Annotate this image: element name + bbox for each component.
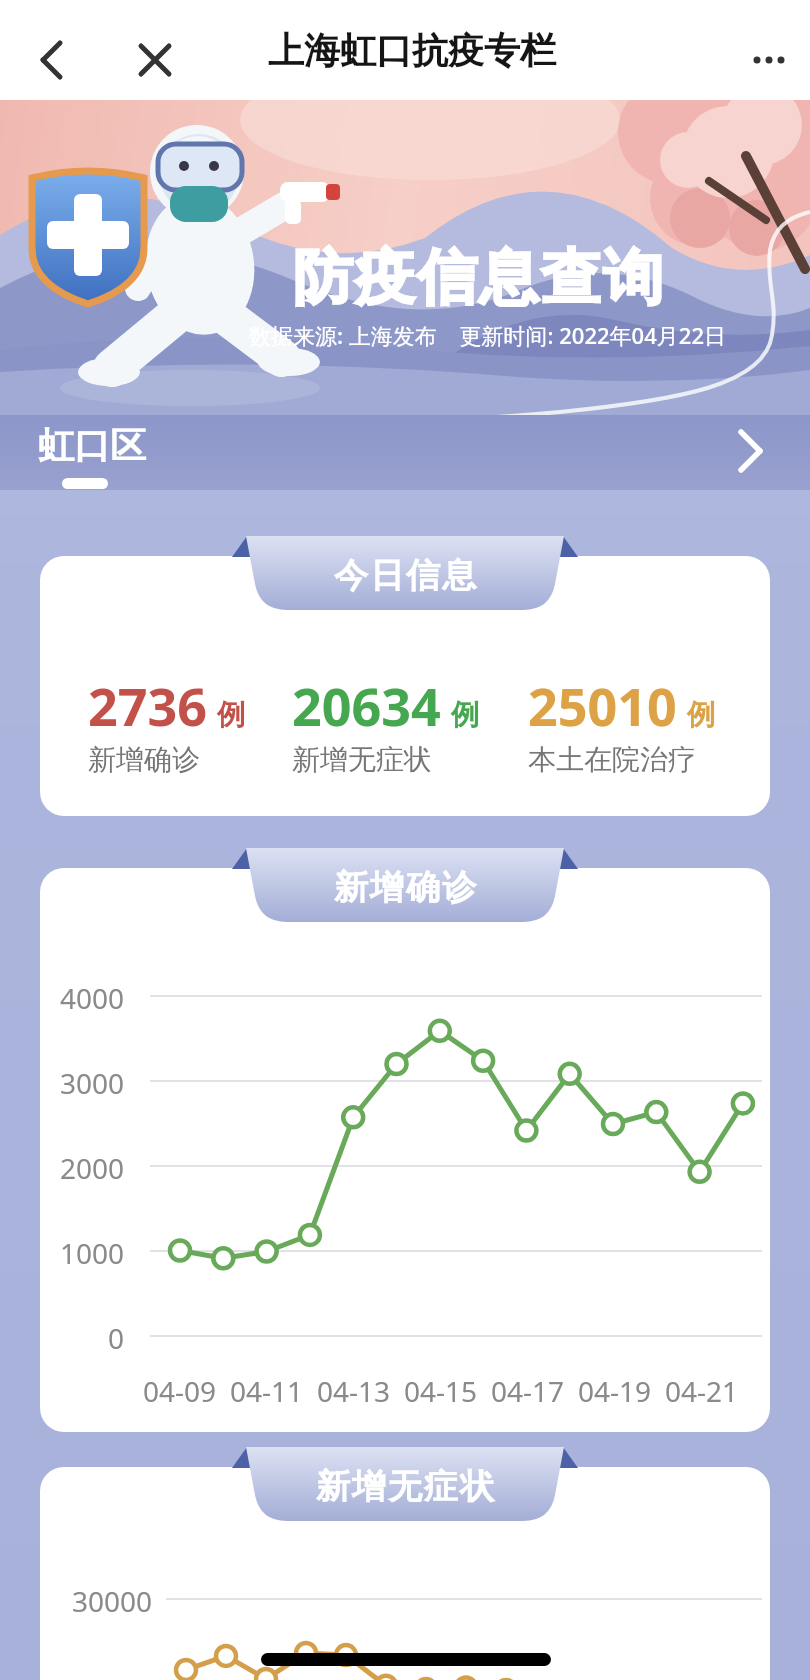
staticText: 新增无症状 — [292, 742, 432, 777]
staticText: 3000 — [60, 1064, 125, 1098]
button[interactable]: 25010 — [528, 670, 715, 777]
staticText: 虹口区 — [38, 423, 146, 468]
staticText: 04-21 — [665, 1372, 739, 1406]
staticText: 04-13 — [317, 1372, 391, 1406]
staticText: 上海虹口抗疫专栏 — [268, 28, 556, 73]
staticText: 20634 — [292, 670, 441, 741]
staticText: 4000 — [60, 979, 125, 1013]
button[interactable]: 虹口区 — [0, 415, 810, 490]
staticText: 例 — [217, 697, 245, 732]
button[interactable]: 20634 — [292, 670, 479, 777]
staticText: 2000 — [60, 1149, 125, 1183]
staticText: 04-11 — [230, 1372, 304, 1406]
button[interactable] — [0, 0, 100, 100]
button[interactable]: 2736 — [88, 670, 245, 777]
staticText: 新增确诊 — [88, 742, 200, 777]
staticText: 30000 — [72, 1582, 153, 1616]
staticText: 0 — [108, 1319, 125, 1353]
staticText: 例 — [451, 697, 479, 732]
staticText: 04-17 — [491, 1372, 565, 1406]
staticText: 1000 — [60, 1234, 125, 1268]
staticText: 04-15 — [404, 1372, 478, 1406]
staticText: 25010 — [528, 670, 677, 741]
staticText: 防疫信息查询 — [292, 240, 664, 316]
button[interactable] — [720, 0, 810, 100]
staticText: 今日信息 — [333, 554, 477, 597]
staticText: 04-09 — [143, 1372, 217, 1406]
staticText: 数据来源: 上海发布 更新时间: 2022年04月22日 — [249, 320, 726, 350]
button[interactable] — [110, 0, 210, 100]
staticText: 2736 — [88, 670, 207, 741]
staticText: 例 — [687, 697, 715, 732]
staticText: 新增无症状 — [315, 1465, 495, 1508]
staticText: 新增确诊 — [333, 866, 477, 909]
staticText: 04-19 — [578, 1372, 652, 1406]
staticText: 本土在院治疗 — [528, 742, 696, 777]
